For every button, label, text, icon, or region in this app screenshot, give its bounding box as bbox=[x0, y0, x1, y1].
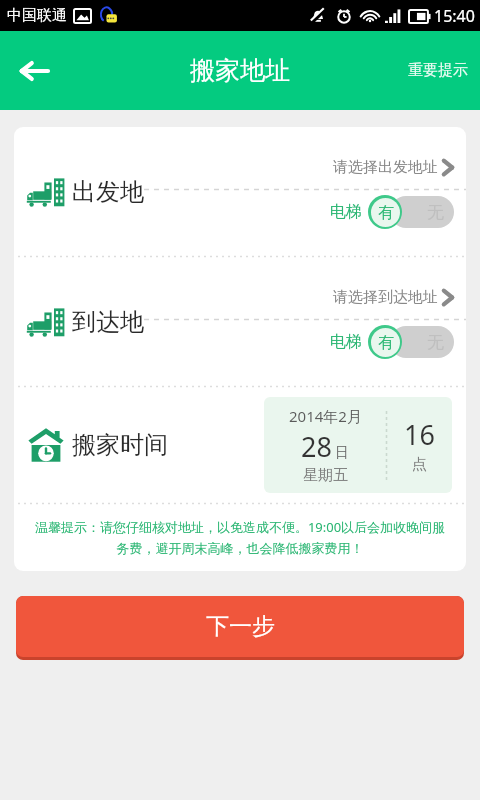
staticText: 温馨提示：请您仔细核对地址，以免造成不便。19:00以后会加收晚间服务费，避开周… bbox=[30, 518, 450, 557]
staticText: 重要提示 bbox=[408, 61, 468, 80]
button[interactable]: Back bbox=[8, 45, 60, 97]
staticText: 出发地 bbox=[72, 177, 144, 207]
staticText: 2014年2月 bbox=[289, 406, 362, 426]
staticText: 搬家地址 bbox=[190, 55, 290, 86]
staticText: 电梯 bbox=[330, 332, 362, 352]
button[interactable]: 无 bbox=[368, 325, 454, 359]
staticText: 搬家时间 bbox=[72, 430, 168, 460]
staticText: 无 bbox=[427, 202, 444, 223]
staticText: 无 bbox=[427, 332, 444, 353]
staticText: 星期五 bbox=[303, 466, 348, 485]
button[interactable]: 无 bbox=[368, 195, 454, 229]
staticText: 日 bbox=[335, 444, 349, 462]
staticText: 16 bbox=[404, 416, 435, 453]
staticText: 请选择出发地址 bbox=[333, 158, 438, 177]
button[interactable]: 请选择到达地址 bbox=[333, 284, 454, 311]
staticText: 有 bbox=[378, 203, 394, 223]
button[interactable]: 下一步 bbox=[16, 596, 464, 657]
button[interactable]: 2014年2月 bbox=[264, 397, 452, 493]
staticText: 有 bbox=[378, 333, 394, 353]
staticText: 下一步 bbox=[206, 612, 275, 641]
button[interactable]: 请选择出发地址 bbox=[333, 154, 454, 181]
staticText: 点 bbox=[412, 455, 427, 474]
button[interactable]: 重要提示 bbox=[404, 53, 472, 88]
staticText: 15:40 bbox=[434, 5, 475, 27]
staticText: 28 bbox=[301, 428, 332, 465]
staticText: 中国联通 bbox=[7, 6, 67, 25]
staticText: 到达地 bbox=[72, 307, 144, 337]
staticText: 电梯 bbox=[330, 202, 362, 222]
staticText: 请选择到达地址 bbox=[333, 288, 438, 307]
